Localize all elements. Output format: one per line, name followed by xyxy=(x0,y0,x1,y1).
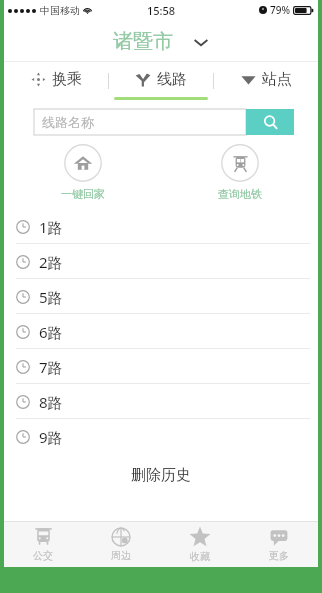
button[interactable]: 换乘 xyxy=(4,62,108,100)
button[interactable]: 删除历史 xyxy=(4,454,318,496)
staticText: 2路 xyxy=(39,252,63,272)
staticText: 周边 xyxy=(111,549,131,562)
staticText: 线路名称 xyxy=(42,114,94,130)
staticText: 查询地铁 xyxy=(218,187,262,201)
button[interactable]: 收藏 xyxy=(160,521,239,567)
button[interactable]: 一键回家 xyxy=(4,144,161,201)
staticText: 一键回家 xyxy=(61,187,105,201)
button[interactable]: 9路 xyxy=(4,419,318,454)
staticText: 5路 xyxy=(39,287,63,307)
staticText: 8路 xyxy=(39,392,63,412)
button[interactable]: 更多 xyxy=(239,521,318,567)
button[interactable]: 公交 xyxy=(4,521,82,567)
staticText: 公交 xyxy=(33,549,53,562)
staticText: 收藏 xyxy=(190,550,210,563)
staticText: 15:58 xyxy=(147,3,176,18)
staticText: 1路 xyxy=(39,217,63,237)
staticText: 6路 xyxy=(39,322,63,342)
button[interactable]: 2路 xyxy=(4,244,318,279)
button[interactable]: 1路 xyxy=(4,209,318,244)
staticText: 换乘 xyxy=(52,70,82,89)
button[interactable]: Search xyxy=(246,109,294,135)
button[interactable]: 5路 xyxy=(4,279,318,314)
button[interactable]: 站点 xyxy=(214,62,318,100)
staticText: 中国移动 xyxy=(40,4,80,17)
staticText: 9路 xyxy=(39,427,63,447)
button[interactable]: 8路 xyxy=(4,384,318,419)
staticText: 79% xyxy=(270,3,290,17)
button[interactable]: 6路 xyxy=(4,314,318,349)
button[interactable]: 诸暨市 xyxy=(113,29,209,54)
staticText: 诸暨市 xyxy=(113,29,173,54)
button[interactable]: 线路 xyxy=(109,62,213,100)
button[interactable]: 查询地铁 xyxy=(161,144,318,201)
staticText: 站点 xyxy=(262,70,292,89)
staticText: 更多 xyxy=(269,549,289,562)
staticText: 线路 xyxy=(157,70,187,89)
staticText: 删除历史 xyxy=(131,466,191,485)
button[interactable]: 线路名称 xyxy=(34,109,246,135)
button[interactable]: 7路 xyxy=(4,349,318,384)
button[interactable]: 周边 xyxy=(82,521,160,567)
staticText: 7路 xyxy=(39,357,63,377)
